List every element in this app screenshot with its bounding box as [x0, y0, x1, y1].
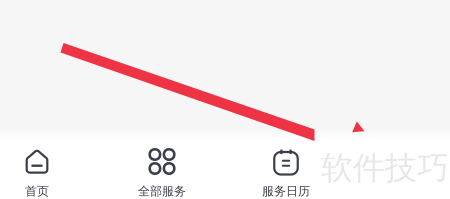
button[interactable]: 全部服务: [100, 134, 224, 199]
staticText: 软件技巧: [321, 148, 449, 188]
staticText: 首页: [25, 184, 49, 199]
button[interactable]: 服务日历: [224, 134, 348, 199]
staticText: 全部服务: [138, 184, 186, 199]
staticText: 服务日历: [262, 184, 310, 199]
button[interactable]: 首页: [0, 134, 99, 199]
